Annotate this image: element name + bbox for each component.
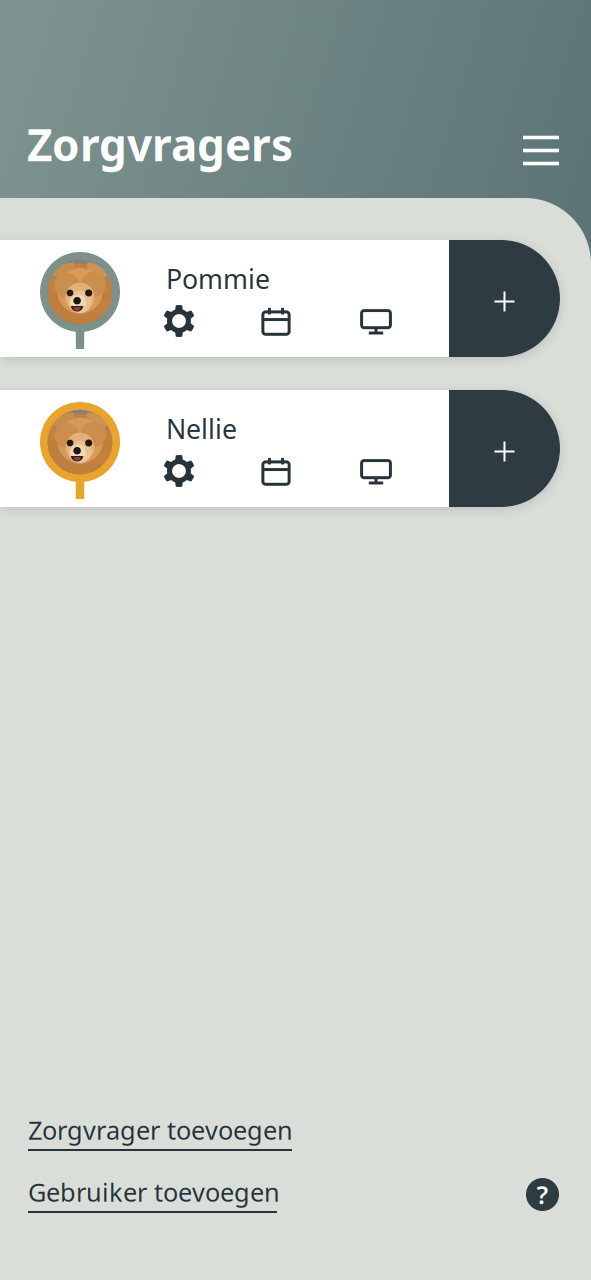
button[interactable]: Zorgvrager toevoegen <box>28 1113 292 1151</box>
button[interactable]: Agenda <box>252 450 300 492</box>
button[interactable]: Instellingen <box>155 450 203 492</box>
button[interactable]: Nellie <box>0 390 300 448</box>
button[interactable]: Scherm <box>352 450 400 492</box>
staticText: Nellie <box>166 411 237 446</box>
staticText: Zorgvrager toevoegen <box>28 1113 293 1147</box>
button[interactable]: Pommie <box>0 240 300 298</box>
staticText: Gebruiker toevoegen <box>28 1175 280 1209</box>
button[interactable]: Toevoegen <box>449 390 560 507</box>
button[interactable]: Agenda <box>252 300 300 342</box>
button[interactable]: Menu <box>511 124 571 177</box>
button[interactable]: Help <box>526 1178 559 1211</box>
button[interactable]: Gebruiker toevoegen <box>28 1175 277 1213</box>
button[interactable]: Toevoegen <box>449 240 560 357</box>
button[interactable]: Instellingen <box>155 300 203 342</box>
staticText: ? <box>536 1178 548 1211</box>
button[interactable]: Scherm <box>352 300 400 342</box>
staticText: Zorgvragers <box>27 115 293 173</box>
staticText: Pommie <box>166 261 270 296</box>
